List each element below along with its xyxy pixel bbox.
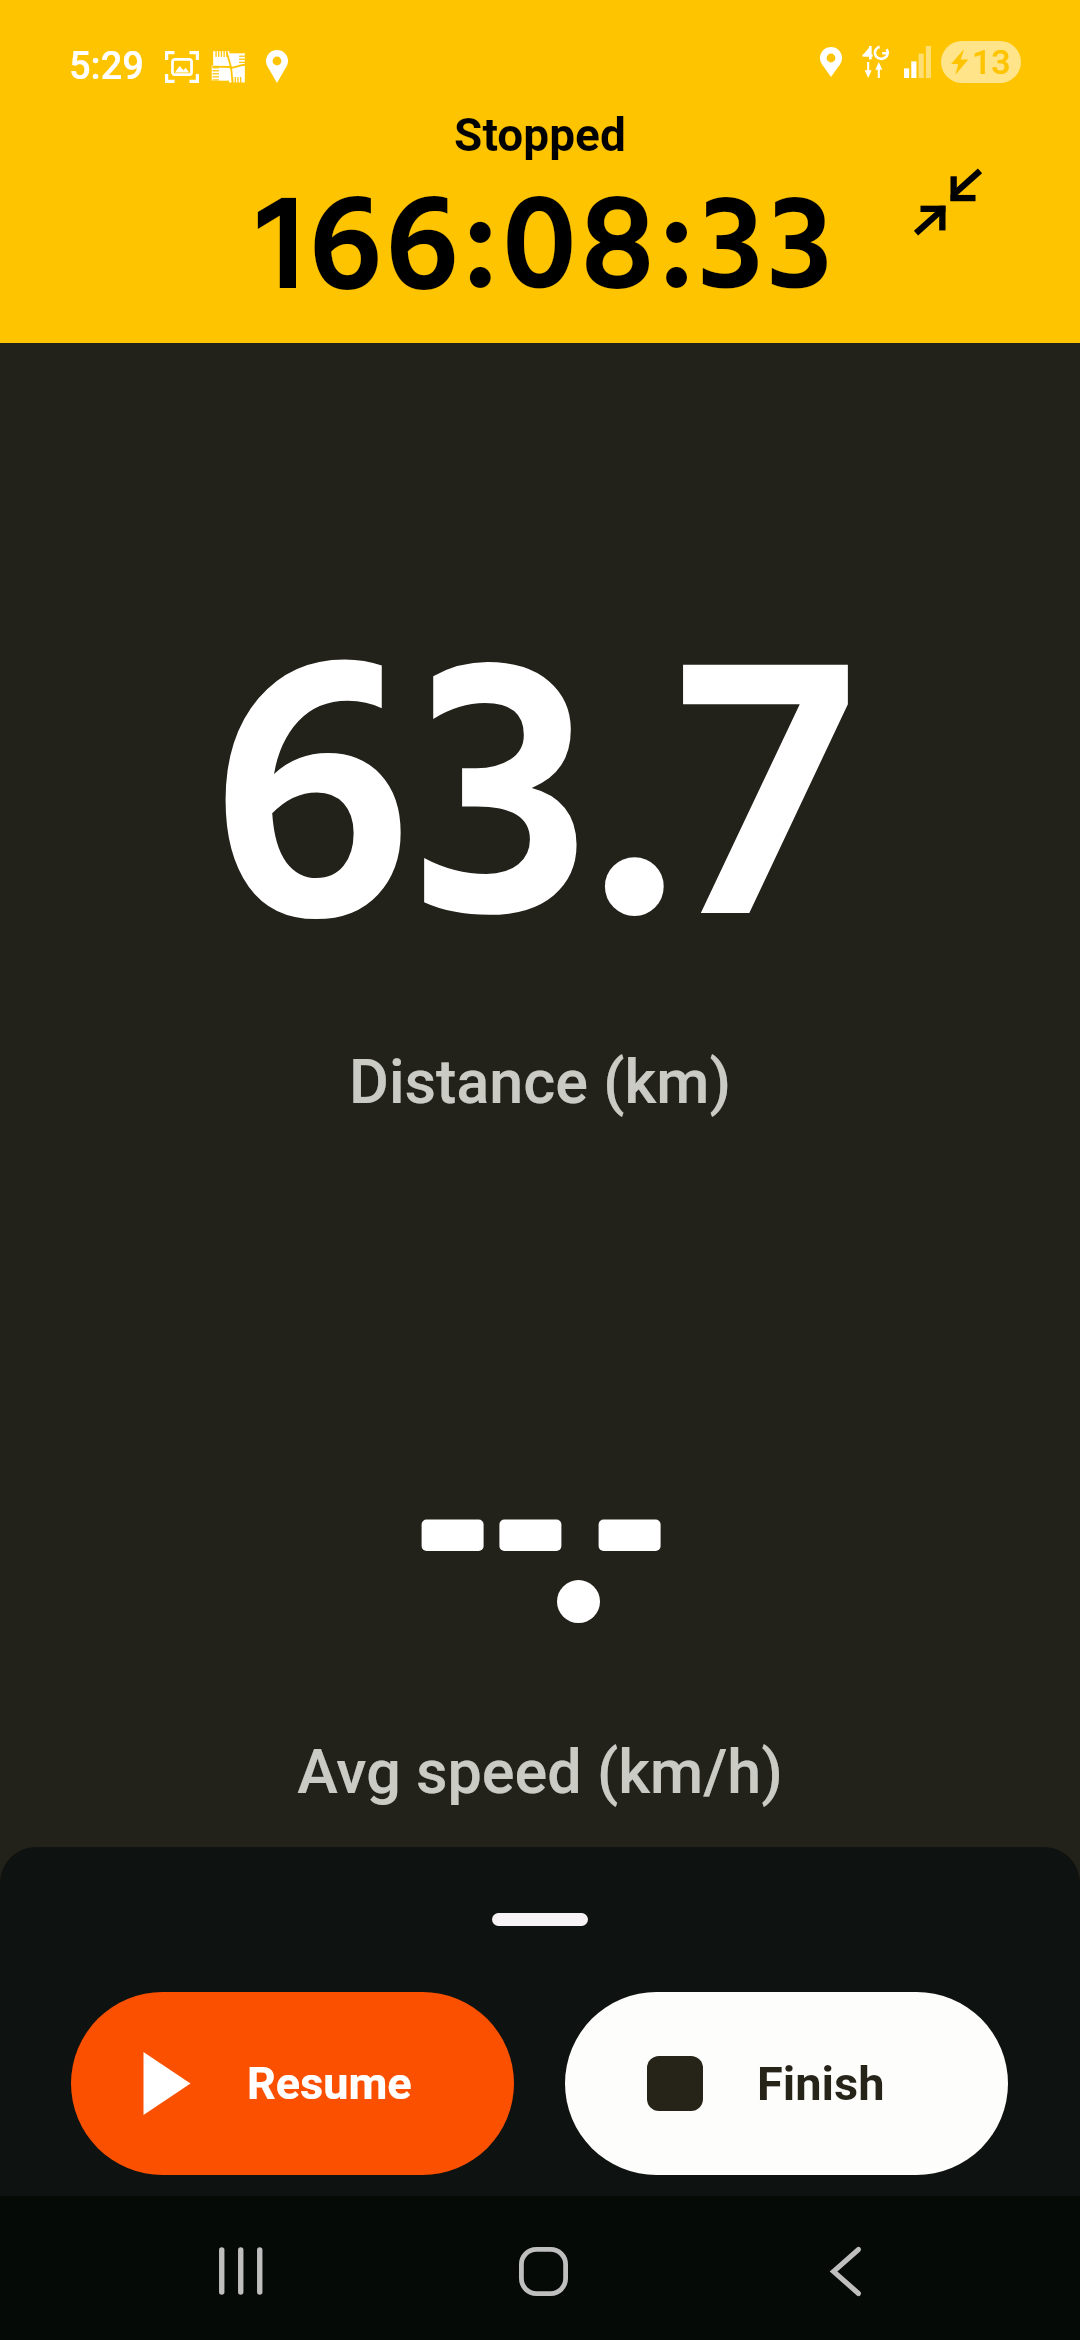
button[interactable]: Resume <box>71 1992 514 2175</box>
staticText: Stopped <box>0 108 1080 162</box>
staticText: Resume <box>247 2057 412 2110</box>
staticText: Distance (km) <box>0 1046 1080 1117</box>
staticText: 13 <box>972 42 1011 82</box>
staticText: Avg speed (km/h) <box>0 1736 1080 1807</box>
staticText: 166:08:33 <box>6 143 1080 362</box>
button[interactable]: Recent apps <box>178 2211 298 2331</box>
button[interactable]: Home <box>483 2211 603 2331</box>
button[interactable]: Finish <box>565 1992 1008 2175</box>
staticText: Finish <box>757 2056 885 2111</box>
staticText: 5:29 <box>69 44 144 89</box>
staticText: 63.7 <box>0 513 1072 1120</box>
button[interactable]: Collapse <box>878 132 1018 272</box>
button[interactable]: Back <box>786 2211 906 2331</box>
